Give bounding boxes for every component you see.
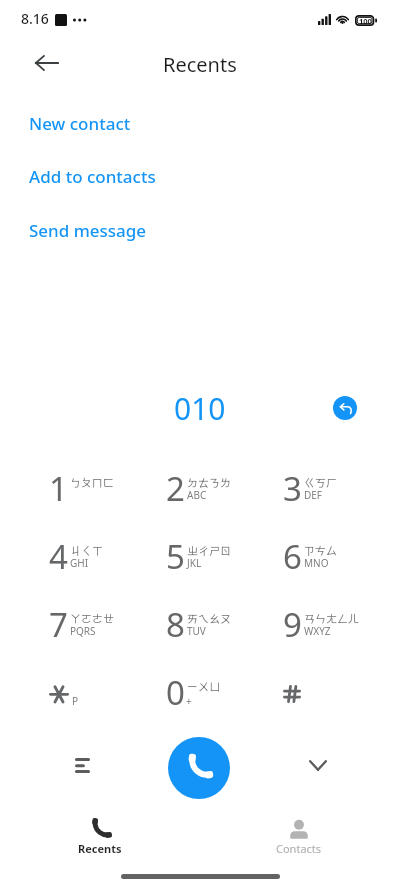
staticText: ㄗㄘㄙ bbox=[304, 542, 337, 558]
button[interactable]: Recents bbox=[40, 813, 160, 861]
staticText: 5 bbox=[166, 534, 185, 579]
staticText: ㄢㄣㄤㄥㄦ bbox=[304, 610, 359, 626]
staticText: ㄓㄔㄕㄖ bbox=[187, 542, 231, 558]
staticText: 9 bbox=[283, 602, 302, 647]
staticText: 0 bbox=[166, 670, 185, 715]
button[interactable]: Back bbox=[22, 39, 70, 87]
staticText: Recents bbox=[163, 51, 237, 78]
staticText: 7 bbox=[49, 602, 68, 647]
staticText: GHI bbox=[70, 556, 89, 570]
staticText: P bbox=[72, 694, 79, 708]
staticText: ㄚㄛㄜㄝ bbox=[70, 610, 114, 626]
staticText: ABC bbox=[187, 488, 207, 502]
staticText: Recents bbox=[78, 841, 122, 856]
button[interactable]: 7 bbox=[49, 590, 166, 658]
staticText: ㄉㄊㄋㄌ bbox=[187, 474, 231, 490]
staticText: 3 bbox=[283, 466, 302, 511]
staticText: TUV bbox=[187, 624, 206, 638]
button[interactable]: 4 bbox=[49, 522, 166, 590]
button[interactable]: 2 bbox=[166, 454, 283, 522]
staticText: 8.16 bbox=[21, 9, 49, 28]
button[interactable]: 5 bbox=[166, 522, 283, 590]
staticText: WXYZ bbox=[304, 624, 331, 638]
button[interactable]: Call options bbox=[59, 742, 106, 789]
staticText: + bbox=[186, 694, 192, 708]
staticText: ㄐㄑㄒ bbox=[70, 542, 103, 558]
staticText: Contacts bbox=[276, 841, 322, 856]
button[interactable]: New contact bbox=[0, 108, 400, 138]
staticText: 010 bbox=[174, 388, 226, 428]
button[interactable]: Contacts bbox=[239, 813, 359, 861]
staticText: 100 bbox=[359, 16, 372, 26]
staticText: 1 bbox=[49, 466, 68, 511]
staticText: ㄅㄆㄇㄈ bbox=[70, 474, 114, 490]
button[interactable]: P bbox=[49, 658, 166, 726]
button[interactable]: Hide keypad bbox=[294, 742, 341, 789]
button[interactable]: 9 bbox=[283, 590, 400, 658]
staticText: 2 bbox=[166, 466, 185, 511]
staticText: Add to contacts bbox=[29, 165, 156, 188]
button[interactable]: 8 bbox=[166, 590, 283, 658]
staticText: DEF bbox=[304, 488, 323, 502]
staticText: Send message bbox=[29, 219, 147, 242]
button[interactable]: 3 bbox=[283, 454, 400, 522]
button[interactable]: 0 bbox=[166, 658, 283, 726]
staticText: JKL bbox=[187, 556, 202, 570]
button[interactable]: 1 bbox=[49, 454, 166, 522]
button[interactable]: Backspace bbox=[333, 396, 357, 420]
staticText: PQRS bbox=[70, 624, 96, 638]
staticText: 6 bbox=[283, 534, 302, 579]
staticText: ㄞㄟㄠㄡ bbox=[187, 610, 231, 626]
staticText: ㄍㄎㄏ bbox=[304, 474, 337, 490]
staticText: 8 bbox=[166, 602, 185, 647]
staticText: New contact bbox=[29, 112, 131, 135]
button[interactable]: Send message bbox=[0, 215, 400, 245]
staticText: 4 bbox=[49, 534, 68, 579]
button[interactable]: Call bbox=[168, 737, 230, 799]
button[interactable]: Add to contacts bbox=[0, 161, 400, 191]
button[interactable]: 6 bbox=[283, 522, 400, 590]
staticText: ㄧㄨㄩ bbox=[187, 678, 220, 694]
staticText: MNO bbox=[304, 556, 329, 570]
button[interactable] bbox=[283, 658, 400, 726]
